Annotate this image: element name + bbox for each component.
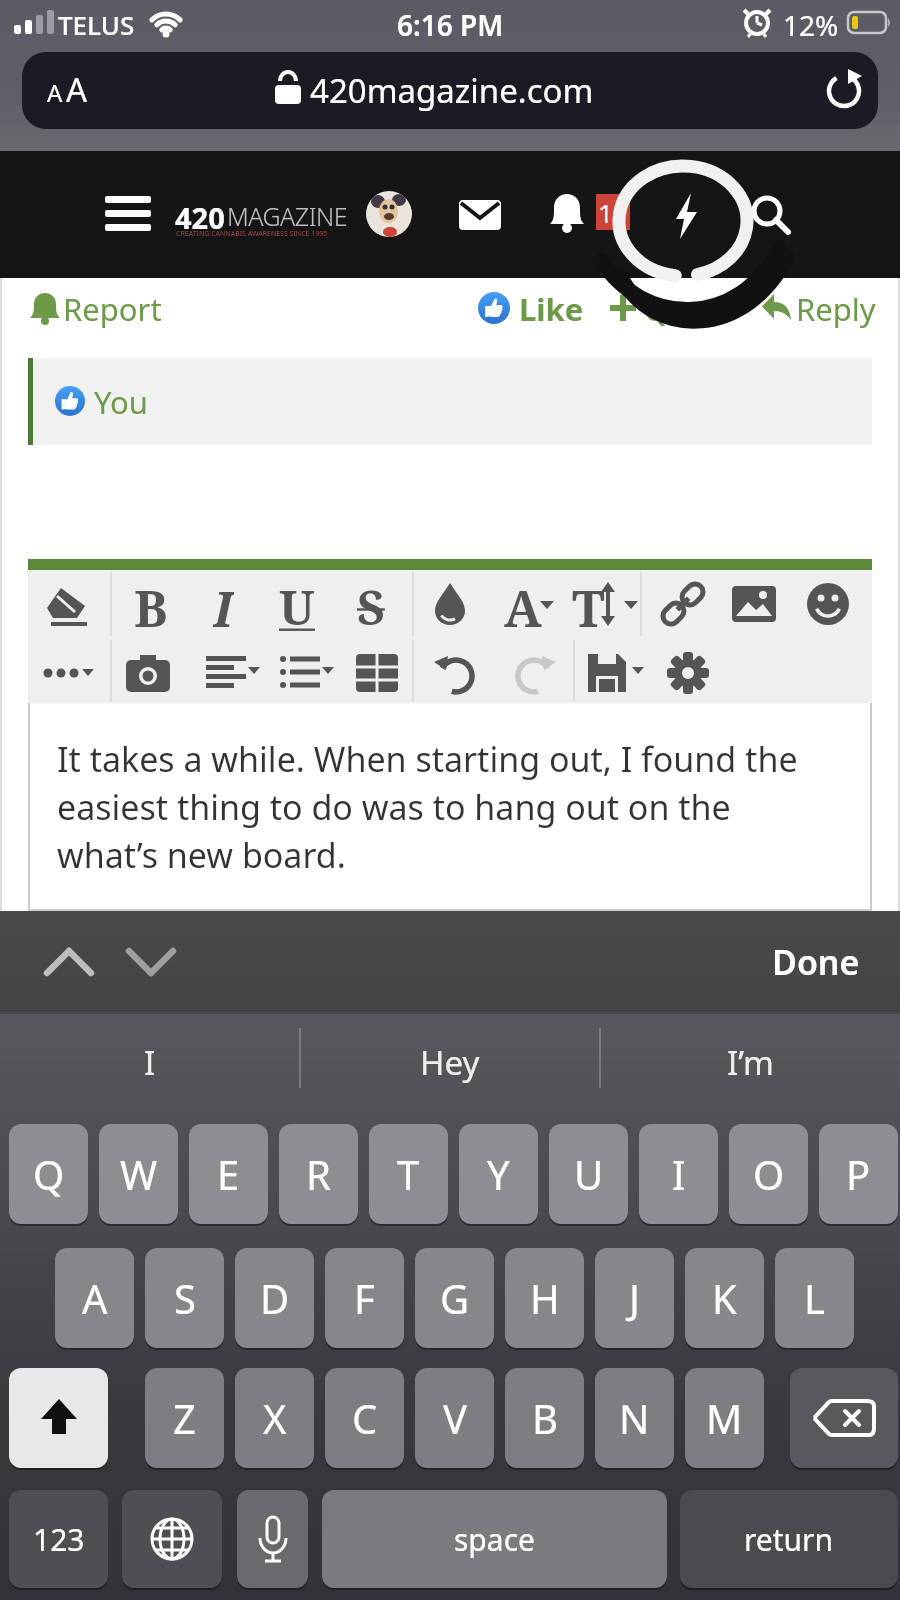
staticText: A [47,76,63,109]
staticText: I [144,1040,156,1085]
button[interactable] [544,190,590,238]
staticText: A [504,574,542,634]
button[interactable]: P [819,1124,898,1224]
staticText: Quote [644,288,735,328]
button[interactable]: A [55,1248,134,1348]
button[interactable] [660,188,712,244]
button[interactable] [600,1014,900,1110]
button[interactable] [664,650,712,696]
button[interactable]: X [235,1368,314,1468]
staticText: R [306,1147,331,1201]
button[interactable] [730,582,778,626]
button[interactable]: C [325,1368,404,1468]
button[interactable] [478,288,578,328]
staticText: A [82,1271,108,1325]
button[interactable] [456,192,504,236]
button[interactable] [204,652,262,694]
button[interactable] [40,650,96,696]
staticText: return [744,1519,834,1560]
staticText: easiest thing to do was to hang out on t… [57,784,731,828]
button[interactable] [22,52,878,129]
button[interactable]: O [729,1124,808,1224]
staticText: F [354,1271,375,1325]
staticText: S [357,574,385,634]
button[interactable] [760,288,872,328]
button[interactable]: N [595,1368,674,1468]
staticText: P [846,1147,871,1201]
button[interactable]: L [775,1248,854,1348]
button[interactable] [36,934,102,990]
button[interactable] [9,1368,108,1468]
staticText: C [352,1391,378,1445]
button[interactable]: U [549,1124,628,1224]
staticText: E [217,1147,240,1201]
staticText: V [443,1391,467,1445]
button[interactable] [100,188,156,244]
button[interactable]: W [99,1124,178,1224]
staticText: 420 [175,198,225,234]
button[interactable] [118,934,184,990]
button[interactable] [746,190,798,242]
button[interactable] [510,652,558,694]
button[interactable]: 123 [9,1490,108,1588]
staticText: 12% [783,6,839,42]
staticText: Z [173,1391,196,1445]
button[interactable] [586,652,646,694]
staticText: D [260,1271,290,1325]
button[interactable]: K [685,1248,764,1348]
staticText: O [753,1147,785,1201]
button[interactable]: Y [459,1124,538,1224]
staticText: T [397,1147,420,1201]
button[interactable]: S [145,1248,224,1348]
button[interactable] [659,580,707,628]
button[interactable] [366,191,412,237]
button[interactable]: H [505,1248,584,1348]
staticText: I’m [727,1040,774,1085]
staticText: K [712,1271,737,1325]
button[interactable]: space [322,1490,667,1588]
button[interactable] [750,930,870,994]
button[interactable]: F [325,1248,404,1348]
button[interactable] [237,1490,308,1588]
button[interactable] [28,288,158,328]
staticText: space [454,1519,535,1560]
staticText: CREATING CANNABIS AWARENESS SINCE 1995 [176,229,328,239]
button[interactable] [0,1014,300,1110]
button[interactable]: Z [145,1368,224,1468]
button[interactable]: E [189,1124,268,1224]
button[interactable] [278,652,336,694]
staticText: Y [487,1147,510,1201]
staticText: I [672,1147,686,1201]
staticText: J [629,1271,640,1325]
button[interactable] [122,1490,222,1588]
button[interactable] [354,652,400,694]
button[interactable]: return [680,1490,898,1588]
button[interactable] [806,582,850,626]
button[interactable]: V [415,1368,494,1468]
button[interactable]: B [505,1368,584,1468]
staticText: 420magazine.com [310,68,594,113]
button[interactable]: T [369,1124,448,1224]
button[interactable] [596,194,630,230]
button[interactable]: Q [9,1124,88,1224]
button[interactable]: M [685,1368,764,1468]
button[interactable] [124,652,172,694]
button[interactable]: I [639,1124,718,1224]
staticText: B [532,1391,558,1445]
staticText: I [213,574,234,634]
button[interactable] [300,1014,600,1110]
button[interactable]: J [595,1248,674,1348]
button[interactable]: D [235,1248,314,1348]
staticText: Reply [796,288,876,328]
staticText: Report [63,288,162,328]
button[interactable] [608,288,728,328]
button[interactable] [428,580,472,628]
button[interactable] [28,358,872,445]
staticText: A [66,67,88,112]
staticText: S [174,1271,196,1325]
button[interactable] [790,1368,898,1468]
button[interactable] [43,580,91,628]
button[interactable]: G [415,1248,494,1348]
button[interactable]: R [279,1124,358,1224]
button[interactable] [432,652,480,694]
